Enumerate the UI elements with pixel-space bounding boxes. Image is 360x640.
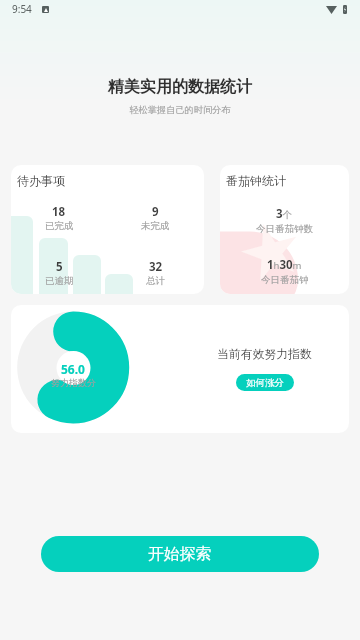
other: App notification	[42, 6, 49, 13]
staticText: 轻松掌握自己的时间分布	[129, 104, 231, 116]
staticText: 9:54	[12, 2, 32, 16]
staticText: 已完成	[45, 220, 74, 232]
button[interactable]: 待办事项	[11, 165, 204, 294]
button[interactable]: 开始探索	[41, 536, 319, 572]
staticText: 如何涨分	[246, 377, 284, 389]
staticText: 开始探索	[148, 544, 212, 564]
staticText: 1h30m	[267, 257, 302, 273]
staticText: 3个	[276, 206, 293, 222]
staticText: 今日番茄钟数	[256, 223, 313, 235]
staticText: 精美实用的数据统计	[108, 77, 252, 97]
staticText: 18	[52, 204, 66, 220]
button[interactable]: 番茄钟统计	[220, 165, 349, 294]
staticText: 9	[152, 204, 159, 220]
staticText: 待办事项	[17, 173, 65, 188]
staticText: 总计	[146, 275, 165, 287]
staticText: 32	[149, 259, 163, 275]
staticText: 今日番茄钟	[261, 274, 309, 286]
staticText: 未完成	[141, 220, 170, 232]
staticText: 已逾期	[45, 275, 74, 287]
staticText: 5	[56, 259, 63, 275]
button[interactable]: 56.0	[11, 305, 349, 433]
staticText: 番茄钟统计	[226, 173, 286, 188]
button[interactable]: 如何涨分	[236, 374, 294, 391]
staticText: 当前有效努力指数	[217, 347, 312, 362]
staticText: 努力指数分	[51, 377, 96, 388]
staticText: 56.0	[61, 361, 85, 377]
